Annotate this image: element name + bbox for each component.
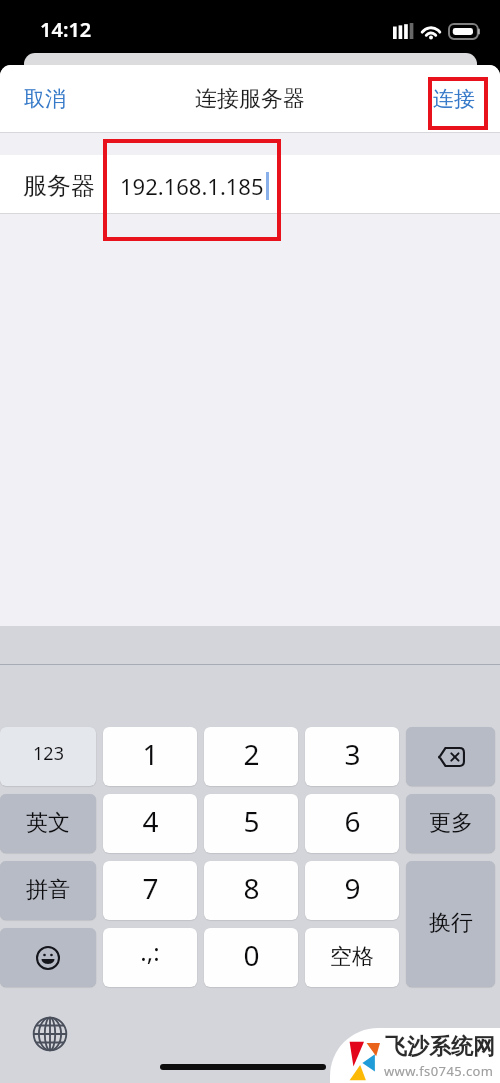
button[interactable]: 7 <box>103 861 197 920</box>
staticText: 123 <box>33 741 64 766</box>
button[interactable]: 8 <box>204 861 298 920</box>
staticText: 飞沙系统网 <box>385 1033 495 1061</box>
staticText: 14:12 <box>40 16 92 43</box>
button[interactable]: 4 <box>103 794 197 853</box>
staticText: 4 <box>142 802 159 840</box>
button[interactable]: 1 <box>103 727 197 786</box>
button[interactable]: Switch keyboard language <box>32 1016 68 1052</box>
staticText: 7 <box>142 869 159 907</box>
button[interactable]: 123 <box>0 727 96 786</box>
staticText: 5 <box>243 802 260 840</box>
button[interactable]: 6 <box>305 794 399 853</box>
staticText: 拼音 <box>26 876 70 904</box>
staticText: 8 <box>243 869 260 907</box>
button[interactable]: 5 <box>204 794 298 853</box>
staticText: .,: <box>140 935 160 968</box>
button[interactable]: 取消 <box>0 72 90 126</box>
staticText: 9 <box>344 869 361 907</box>
staticText: 空格 <box>330 943 374 971</box>
staticText: 6 <box>344 802 361 840</box>
staticText: 英文 <box>26 809 70 837</box>
button[interactable]: 3 <box>305 727 399 786</box>
staticText: 连接 <box>433 86 475 112</box>
button[interactable]: 9 <box>305 861 399 920</box>
button[interactable]: 英文 <box>0 794 96 853</box>
button[interactable]: 拼音 <box>0 861 96 920</box>
staticText: 连接服务器 <box>195 85 305 113</box>
staticText: 1 <box>142 735 159 773</box>
button[interactable]: 空格 <box>305 928 399 987</box>
button[interactable]: 0 <box>204 928 298 987</box>
button[interactable]: 更多 <box>406 794 495 853</box>
button[interactable] <box>406 727 495 786</box>
button[interactable] <box>0 928 96 987</box>
staticText: 服务器 <box>23 171 95 201</box>
staticText: 更多 <box>429 809 473 837</box>
staticText: 2 <box>243 735 260 773</box>
button[interactable]: 连接 <box>408 72 500 126</box>
staticText: 取消 <box>24 86 66 112</box>
button[interactable]: .,: <box>103 928 197 987</box>
button[interactable]: 换行 <box>406 861 495 987</box>
staticText: www.fs0745.com <box>384 1062 494 1080</box>
staticText: 0 <box>243 936 260 974</box>
button[interactable]: 2 <box>204 727 298 786</box>
staticText: 192.168.1.185 <box>120 171 264 201</box>
staticText: 3 <box>344 735 361 773</box>
staticText: 换行 <box>429 909 473 937</box>
